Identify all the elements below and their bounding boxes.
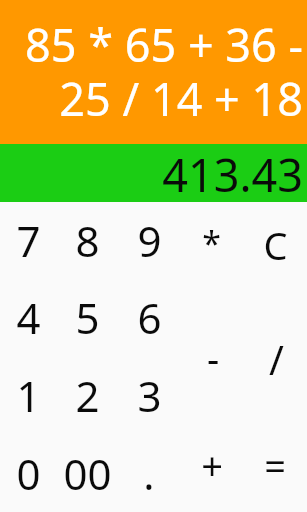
- button[interactable]: 0: [0, 434, 56, 512]
- staticText: 9: [137, 212, 162, 269]
- staticText: 1: [16, 367, 41, 424]
- button[interactable]: 8: [56, 202, 118, 279]
- button[interactable]: 85 * 65 + 36 - 25 / 14 + 18: [0, 0, 307, 144]
- button[interactable]: 413.43: [0, 144, 307, 202]
- staticText: =: [264, 439, 286, 491]
- button[interactable]: 4: [0, 279, 56, 356]
- button[interactable]: 5: [56, 279, 118, 356]
- staticText: 413.43: [162, 144, 303, 202]
- button[interactable]: 7: [0, 202, 56, 279]
- button[interactable]: Decimal point: [118, 434, 180, 512]
- staticText: C: [263, 219, 288, 271]
- button[interactable]: Divide: [245, 332, 307, 380]
- staticText: 3: [137, 367, 162, 424]
- button[interactable]: Clear: [243, 202, 307, 279]
- staticText: *: [202, 220, 221, 266]
- staticText: /: [269, 332, 284, 380]
- button[interactable]: Multiply: [180, 202, 243, 279]
- button[interactable]: Equals: [243, 434, 307, 512]
- staticText: 8: [75, 212, 100, 269]
- button[interactable]: 3: [118, 356, 180, 434]
- staticText: 85 * 65 + 36 - 25 / 14 + 18: [8, 14, 303, 130]
- staticText: .: [143, 445, 155, 502]
- button[interactable]: 1: [0, 356, 56, 434]
- staticText: 7: [16, 212, 41, 269]
- staticText: 0: [16, 445, 41, 502]
- staticText: -: [207, 332, 220, 380]
- button[interactable]: 6: [118, 279, 180, 356]
- button[interactable]: Minus: [182, 332, 245, 380]
- button[interactable]: Plus: [180, 434, 243, 512]
- staticText: 00: [63, 445, 112, 502]
- staticText: 5: [75, 289, 100, 346]
- staticText: 6: [137, 289, 162, 346]
- staticText: +: [201, 439, 223, 491]
- button[interactable]: 2: [56, 356, 118, 434]
- staticText: 4: [16, 289, 41, 346]
- staticText: 2: [75, 367, 100, 424]
- button[interactable]: 9: [118, 202, 180, 279]
- button[interactable]: 00: [56, 434, 118, 512]
